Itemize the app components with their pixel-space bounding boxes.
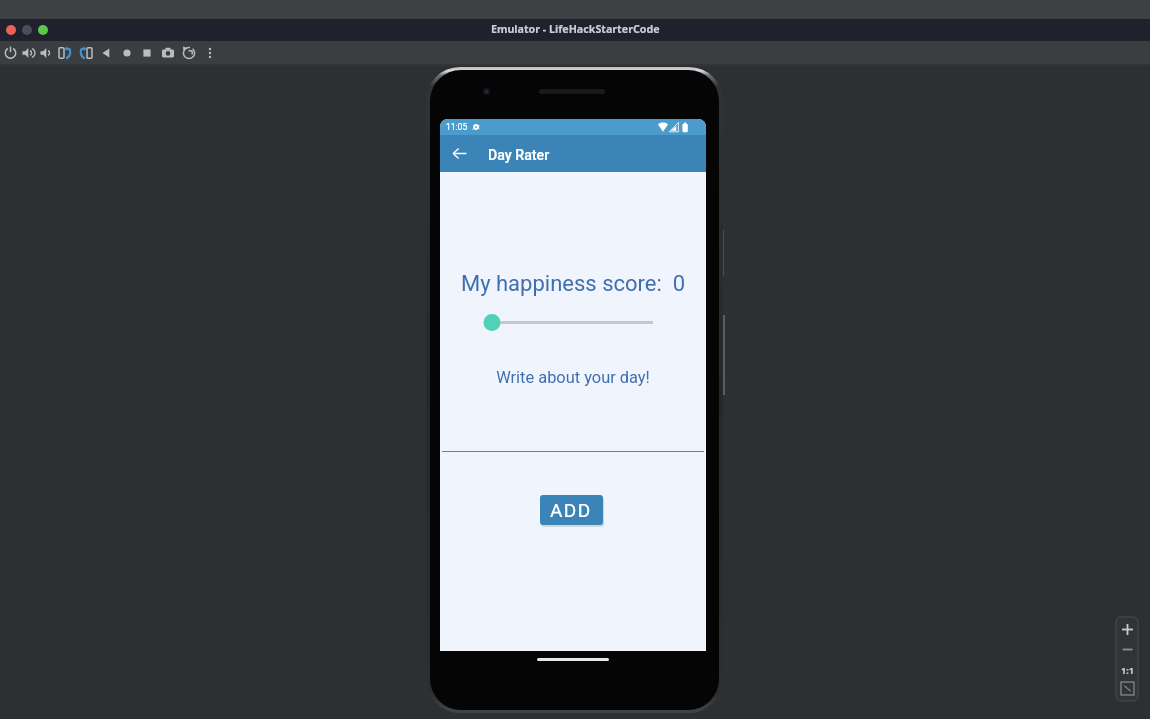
button[interactable]: Overview bbox=[138, 41, 156, 65]
button[interactable]: Volume up bbox=[19, 41, 37, 65]
button[interactable]: More bbox=[201, 41, 219, 65]
button[interactable]: Back bbox=[97, 41, 115, 65]
button[interactable]: Zoom out bbox=[1116, 640, 1138, 659]
staticText: Write about your day! bbox=[440, 368, 706, 387]
staticText: 1:1 bbox=[1121, 664, 1134, 676]
button[interactable]: Rotate right bbox=[77, 41, 95, 65]
button[interactable]: Take screenshot bbox=[159, 41, 177, 65]
staticText: My happiness score: 0 bbox=[440, 271, 706, 297]
button[interactable]: Fit to window bbox=[1116, 679, 1138, 698]
button[interactable]: Rotate left bbox=[56, 41, 74, 65]
button[interactable]: 1:1 bbox=[1116, 660, 1138, 679]
button[interactable]: Zoom in bbox=[1116, 620, 1138, 639]
button[interactable]: Power bbox=[2, 41, 20, 65]
staticText: Day Rater bbox=[488, 147, 550, 164]
staticText: ADD bbox=[550, 499, 592, 521]
staticText: 11:05 bbox=[446, 122, 468, 132]
button[interactable]: Back bbox=[449, 143, 470, 164]
staticText: Emulator - LifeHackStarterCode bbox=[491, 22, 660, 37]
button[interactable]: Restore bbox=[180, 41, 198, 65]
button[interactable]: Home bbox=[118, 41, 136, 65]
button[interactable]: Volume down bbox=[37, 41, 55, 65]
button[interactable]: Happiness score slider bbox=[483, 313, 663, 332]
button[interactable]: ADD bbox=[540, 495, 603, 525]
